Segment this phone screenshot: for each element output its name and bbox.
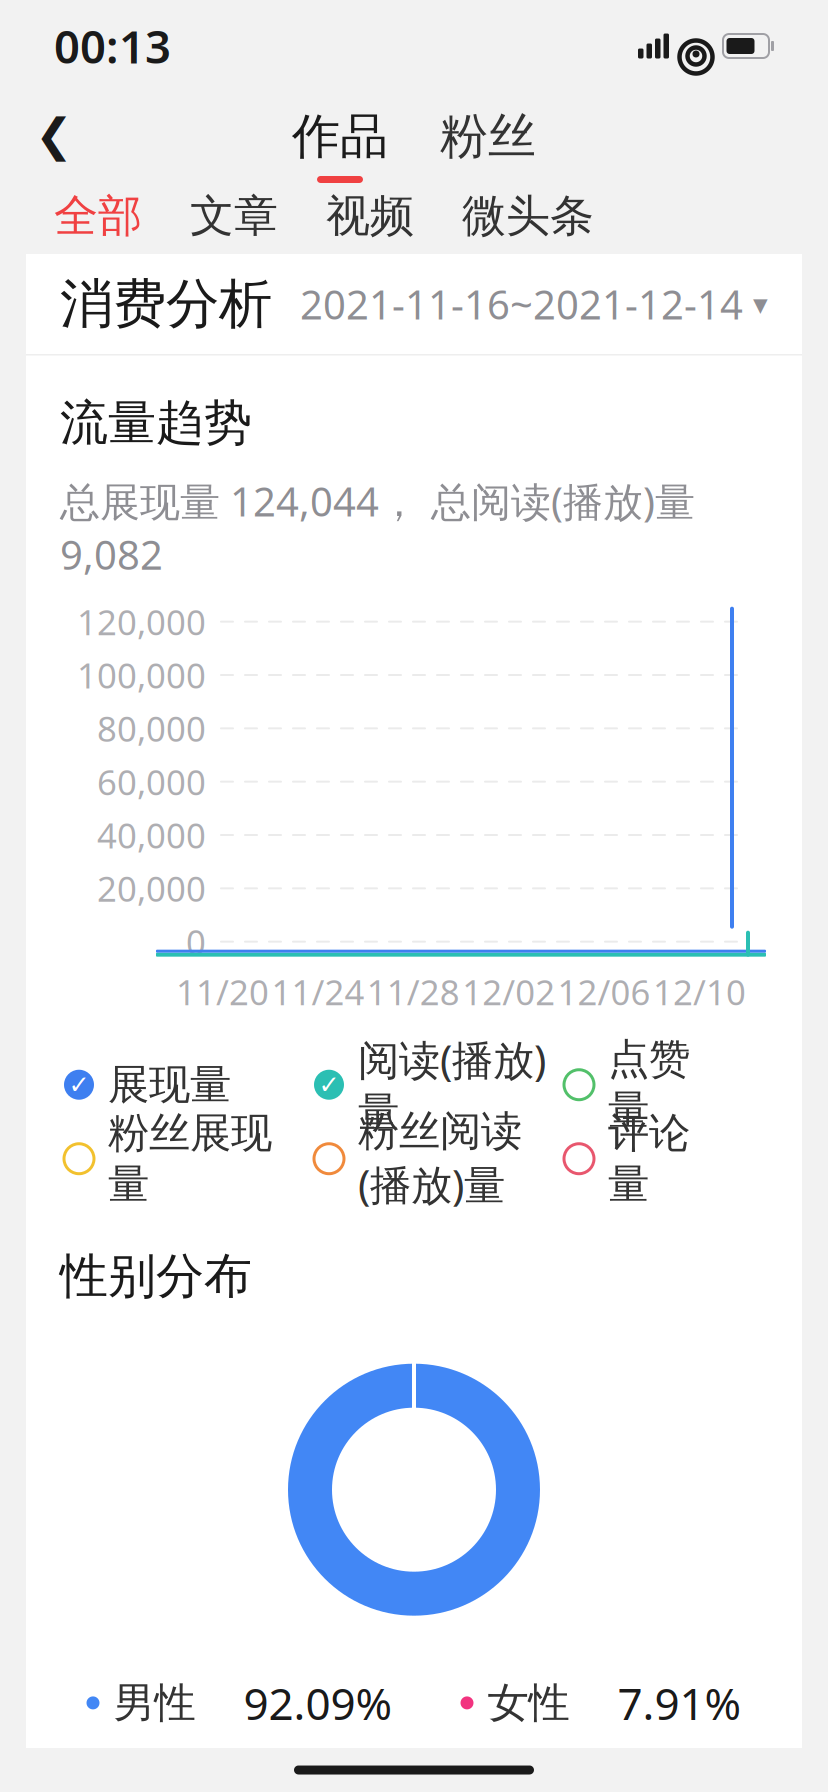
staticText: 2021-11-16~2021-12-14 xyxy=(300,277,743,330)
staticText: 视频 xyxy=(326,189,414,243)
staticText: 粉丝展现量 xyxy=(108,1108,272,1209)
button[interactable]: 全部 xyxy=(30,178,166,254)
staticText: 92.09% xyxy=(243,1674,392,1732)
button[interactable]: 粉丝展现量 xyxy=(64,1135,314,1183)
staticText: 男性 xyxy=(113,1677,195,1728)
staticText: 点赞量 xyxy=(608,1034,690,1135)
staticText: 消费分析 xyxy=(60,271,272,337)
staticText: 12/06 xyxy=(558,969,651,1015)
button[interactable]: 作品 xyxy=(284,102,396,188)
staticText: ❮ xyxy=(35,109,73,161)
staticText: 20,000 xyxy=(97,865,206,911)
button[interactable]: 评论量 xyxy=(564,1135,724,1183)
staticText: 11/24 xyxy=(271,969,364,1015)
staticText: 全部 xyxy=(54,189,142,243)
button[interactable]: ✓ xyxy=(64,1061,314,1109)
staticText: 0 xyxy=(186,919,206,965)
button[interactable]: 点赞量 xyxy=(564,1061,724,1109)
staticText: 粉丝 xyxy=(440,107,536,166)
staticText: 120,000 xyxy=(77,599,206,645)
staticText: ✓ xyxy=(318,1070,339,1099)
staticText: 粉丝阅读(播放)量 xyxy=(358,1106,522,1212)
button[interactable]: 视频 xyxy=(302,178,438,254)
staticText: 流量趋势 xyxy=(60,393,252,452)
button[interactable]: 2021-11-16~2021-12-14 xyxy=(300,267,768,340)
staticText: 11/28 xyxy=(367,969,460,1015)
staticText: 11/20 xyxy=(176,969,269,1015)
staticText: 80,000 xyxy=(97,705,206,751)
staticText: 100,000 xyxy=(77,652,206,698)
staticText: 女性 xyxy=(487,1677,569,1728)
button[interactable]: ✓ xyxy=(314,1061,564,1109)
staticText: 总展现量 124,044， 总阅读(播放)量 9,082 xyxy=(60,474,695,581)
button[interactable]: 文章 xyxy=(166,178,302,254)
staticText: 12/10 xyxy=(653,969,746,1015)
staticText: 作品 xyxy=(292,107,388,166)
staticText: 文章 xyxy=(190,189,278,243)
staticText: 12/02 xyxy=(462,969,555,1015)
button[interactable]: Back xyxy=(14,92,94,178)
staticText: 展现量 xyxy=(108,1059,231,1110)
button[interactable]: 粉丝 xyxy=(432,102,544,188)
button[interactable]: 粉丝阅读(播放)量 xyxy=(314,1135,564,1183)
staticText: 60,000 xyxy=(97,759,206,805)
staticText: ✓ xyxy=(68,1070,89,1099)
staticText: 7.91% xyxy=(617,1674,741,1732)
staticText: ▾ xyxy=(753,287,768,321)
staticText: 性别分布 xyxy=(60,1247,252,1306)
staticText: 40,000 xyxy=(97,812,206,858)
button[interactable]: 微头条 xyxy=(438,178,618,254)
staticText: 评论量 xyxy=(608,1108,690,1209)
staticText: 阅读(播放)量 xyxy=(358,1032,546,1138)
staticText: 00:13 xyxy=(54,16,171,76)
staticText: 微头条 xyxy=(462,189,594,243)
